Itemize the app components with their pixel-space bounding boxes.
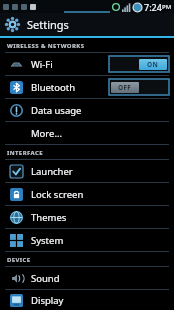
staticText: More...: [31, 127, 63, 140]
staticText: Display: [31, 294, 64, 307]
staticText: DEVICE: [7, 256, 31, 264]
button[interactable]: Bluetooth: [0, 76, 174, 98]
staticText: Launcher: [31, 165, 73, 178]
button[interactable]: Wi-Fi: [0, 53, 174, 75]
staticText: Settings: [27, 17, 69, 32]
button[interactable]: Settings: [0, 13, 174, 36]
button[interactable]: Lock screen: [0, 183, 174, 205]
button[interactable]: Sound: [0, 267, 174, 289]
button[interactable]: More...: [0, 122, 174, 144]
button[interactable]: Display: [0, 290, 174, 310]
staticText: Themes: [31, 211, 67, 224]
staticText: Bluetooth: [31, 81, 76, 94]
staticText: WIRELESS & NETWORKS: [7, 42, 85, 50]
staticText: 7:24: [144, 1, 162, 13]
button[interactable]: Data usage: [0, 99, 174, 121]
staticText: Lock screen: [31, 188, 84, 201]
button[interactable]: Launcher: [0, 160, 174, 182]
staticText: Wi-Fi: [31, 58, 53, 71]
staticText: ON: [147, 60, 159, 69]
button[interactable]: System: [0, 229, 174, 251]
staticText: Data usage: [31, 104, 82, 117]
button[interactable]: Toggle off: [109, 79, 169, 95]
staticText: PM: [162, 3, 172, 11]
button[interactable]: Toggle on: [109, 56, 169, 72]
staticText: INTERFACE: [7, 149, 43, 157]
button[interactable]: Themes: [0, 206, 174, 228]
staticText: Sound: [31, 272, 60, 285]
staticText: OFF: [118, 83, 132, 92]
staticText: System: [31, 234, 64, 247]
